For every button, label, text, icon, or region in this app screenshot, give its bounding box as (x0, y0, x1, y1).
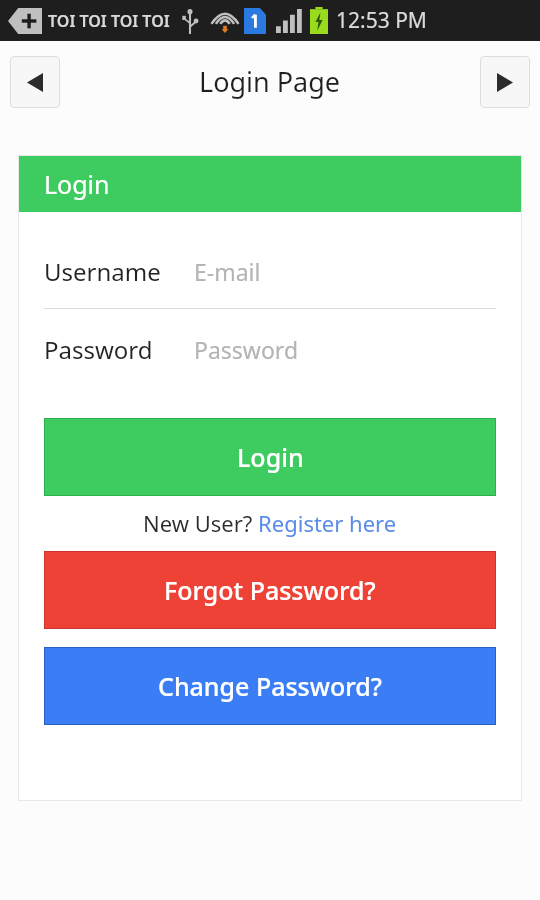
button[interactable]: Password (44, 333, 496, 366)
button[interactable]: Forward (480, 56, 530, 108)
staticText: Login (44, 167, 110, 201)
staticText: 12:53 PM (336, 6, 427, 35)
button[interactable]: Username (44, 255, 496, 288)
staticText: Change Password? (158, 669, 382, 703)
staticText: Forgot Password? (164, 573, 376, 607)
staticText: TOI TOI TOI TOI (48, 10, 170, 32)
button[interactable]: New User? Register here (143, 508, 397, 538)
button[interactable]: Change Password? (44, 647, 496, 725)
staticText: Login (237, 440, 304, 474)
button[interactable]: Login (44, 418, 496, 496)
button[interactable]: Back (10, 56, 60, 108)
staticText: E-mail (194, 256, 261, 287)
button[interactable]: Forgot Password? (44, 551, 496, 629)
staticText: Password (44, 333, 153, 366)
staticText: Password (194, 334, 299, 365)
staticText: New User? Register here (143, 508, 397, 538)
staticText: Login Page (199, 63, 341, 100)
staticText: Username (44, 255, 161, 288)
